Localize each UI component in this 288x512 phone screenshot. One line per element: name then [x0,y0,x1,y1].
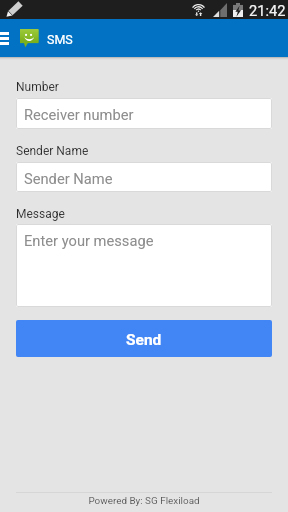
staticText: Sender Name [16,144,89,158]
staticText: Sender Name [24,170,113,187]
staticText: Send [126,331,162,349]
staticText: 21:42 [249,2,286,19]
staticText: Receiver number [24,106,134,123]
button[interactable]: Receiver number [16,98,272,129]
staticText: SMS [47,32,73,47]
button[interactable]: Send [16,320,272,357]
button[interactable]: Enter your message [16,224,272,307]
button[interactable]: Open navigation drawer [0,19,9,57]
staticText: Number [16,80,59,94]
staticText: Message [16,207,65,221]
staticText: Enter your message [24,232,154,249]
staticText: Powered By: SG Flexiload [88,495,200,507]
button[interactable]: Sender Name [16,162,272,192]
